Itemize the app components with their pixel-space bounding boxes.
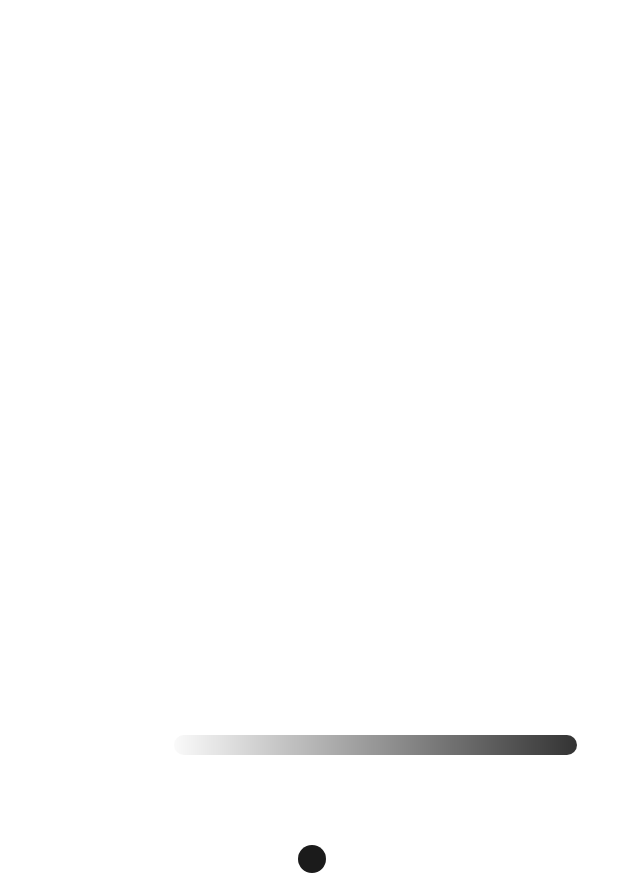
button[interactable]: Toggle: [298, 845, 326, 873]
button[interactable]: Brightness slider: [174, 735, 577, 755]
